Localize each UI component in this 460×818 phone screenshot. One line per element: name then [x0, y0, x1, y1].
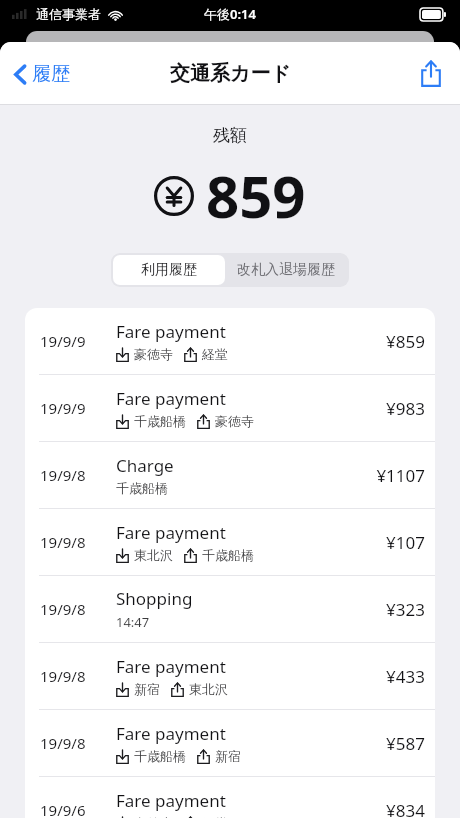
staticText: ¥323	[347, 598, 425, 621]
staticText: Shopping	[116, 587, 193, 610]
staticText: 新宿	[134, 681, 160, 697]
staticText: 千歳船橋	[134, 413, 186, 429]
button[interactable]: 19/9/8	[25, 442, 435, 508]
staticText: 履歴	[32, 62, 70, 86]
staticText: Fare payment	[116, 320, 226, 343]
staticText: 利用履歴	[141, 261, 197, 279]
staticText: Fare payment	[116, 521, 226, 544]
staticText: ¥433	[347, 665, 425, 688]
button[interactable]: 19/9/8	[25, 710, 435, 776]
staticText: 新宿	[215, 748, 241, 764]
staticText: ¥983	[347, 397, 425, 420]
staticText: Fare payment	[116, 789, 226, 812]
staticText: 交通系カード	[170, 61, 291, 86]
staticText: Fare payment	[116, 655, 226, 678]
staticText: Fare payment	[116, 387, 226, 410]
button[interactable]: 履歴	[10, 58, 74, 90]
staticText: 東北沢	[134, 547, 173, 563]
staticText: 14:47	[116, 613, 150, 631]
staticText: 19/9/8	[40, 532, 116, 552]
button[interactable]: 19/9/8	[25, 576, 435, 642]
staticText: 19/9/9	[40, 398, 116, 418]
button[interactable]: 19/9/8	[25, 509, 435, 575]
button[interactable]: 改札入退場履歴	[225, 255, 347, 285]
button[interactable]: 19/9/8	[25, 643, 435, 709]
staticText: 豪徳寺	[134, 815, 173, 818]
staticText: 豪徳寺	[215, 413, 254, 429]
staticText: 千歳船橋	[116, 480, 168, 496]
button[interactable]: Share	[414, 54, 448, 93]
staticText: Charge	[116, 454, 174, 477]
staticText: 19/9/9	[40, 331, 116, 351]
staticText: ¥859	[347, 330, 425, 353]
staticText: 千歳船橋	[202, 547, 254, 563]
staticText: 19/9/8	[40, 599, 116, 619]
staticText: 豪徳寺	[134, 346, 173, 362]
button[interactable]: 利用履歴	[113, 255, 225, 285]
button[interactable]: 19/9/6	[25, 777, 435, 818]
button[interactable]: 19/9/9	[25, 375, 435, 441]
staticText: 改札入退場履歴	[237, 261, 335, 279]
staticText: 19/9/8	[40, 666, 116, 686]
staticText: ¥107	[347, 531, 425, 554]
staticText: 19/9/6	[40, 800, 116, 818]
staticText: 東北沢	[189, 681, 228, 697]
button[interactable]: 19/9/9	[25, 308, 435, 374]
staticText: 経堂	[202, 346, 228, 362]
staticText: ¥834	[347, 799, 425, 818]
staticText: ¥587	[347, 732, 425, 755]
staticText: 19/9/8	[40, 465, 116, 485]
staticText: 経堂	[202, 815, 228, 818]
staticText: 午後0:14	[204, 5, 256, 23]
staticText: 残額	[213, 125, 247, 146]
staticText: 通信事業者	[36, 6, 101, 22]
staticText: 千歳船橋	[134, 748, 186, 764]
staticText: 19/9/8	[40, 733, 116, 753]
staticText: 859	[206, 156, 306, 235]
staticText: Fare payment	[116, 722, 226, 745]
staticText: ¥1107	[347, 464, 425, 487]
